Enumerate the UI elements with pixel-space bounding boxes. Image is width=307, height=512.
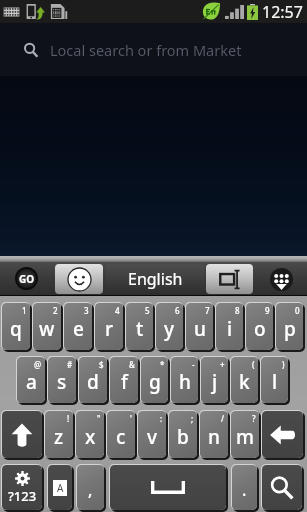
staticText: 3 bbox=[84, 305, 89, 316]
button[interactable]: s bbox=[48, 357, 76, 403]
staticText: GO bbox=[19, 272, 35, 286]
button[interactable]: e bbox=[64, 303, 92, 350]
staticText: x bbox=[85, 424, 96, 450]
staticText: m bbox=[236, 424, 254, 450]
staticText: b bbox=[177, 424, 189, 450]
button[interactable]: . bbox=[232, 465, 257, 510]
staticText: ? bbox=[252, 413, 256, 424]
staticText: 9 bbox=[265, 305, 270, 316]
staticText: ) bbox=[282, 359, 285, 370]
staticText: 8 bbox=[235, 305, 240, 316]
button[interactable]: v bbox=[138, 411, 166, 458]
staticText: 0 bbox=[295, 305, 300, 316]
button[interactable]: l bbox=[261, 357, 288, 403]
staticText: 12:57 bbox=[262, 1, 303, 23]
staticText: u bbox=[194, 316, 206, 342]
staticText: ?123 bbox=[8, 487, 37, 505]
staticText: Local search or from Market bbox=[50, 40, 242, 60]
button[interactable]: k bbox=[231, 357, 258, 403]
staticText: r bbox=[105, 316, 114, 342]
button[interactable]: d bbox=[79, 357, 107, 403]
button[interactable]: , bbox=[77, 465, 104, 510]
staticText: w bbox=[39, 316, 55, 342]
button[interactable]: Resize keyboard bbox=[206, 264, 253, 294]
staticText: 5 bbox=[145, 305, 150, 316]
staticText: i bbox=[227, 316, 233, 342]
button[interactable]: i bbox=[216, 303, 243, 350]
staticText: " bbox=[97, 413, 101, 424]
button[interactable]: More options bbox=[269, 267, 293, 291]
button[interactable]: Local search or from Market bbox=[0, 23, 307, 76]
button[interactable]: f bbox=[110, 357, 138, 403]
button[interactable]: j bbox=[201, 357, 228, 403]
staticText: d bbox=[87, 369, 99, 395]
staticText: f bbox=[121, 369, 128, 395]
button[interactable]: Backspace bbox=[262, 411, 303, 458]
button[interactable]: a bbox=[17, 357, 45, 403]
button[interactable]: Shift bbox=[2, 411, 42, 458]
staticText: - bbox=[192, 359, 195, 370]
staticText: ( bbox=[252, 359, 255, 370]
staticText: # bbox=[67, 359, 73, 370]
staticText: ' bbox=[130, 413, 132, 424]
staticText: q bbox=[10, 316, 22, 342]
staticText: . bbox=[242, 479, 247, 501]
button[interactable]: Emoji bbox=[55, 264, 103, 294]
button[interactable]: o bbox=[246, 303, 273, 350]
staticText: y bbox=[164, 316, 175, 342]
staticText: 6 bbox=[175, 305, 180, 316]
staticText: + bbox=[220, 359, 225, 370]
button[interactable]: Space bbox=[110, 465, 226, 510]
staticText: l bbox=[272, 369, 278, 395]
staticText: o bbox=[254, 316, 266, 342]
staticText: 7 bbox=[205, 305, 210, 316]
staticText: z bbox=[54, 424, 64, 450]
button[interactable]: g bbox=[141, 357, 168, 403]
button[interactable]: p bbox=[276, 303, 303, 350]
button[interactable]: m bbox=[231, 411, 259, 458]
button[interactable]: h bbox=[171, 357, 198, 403]
button[interactable]: Language bbox=[48, 465, 72, 510]
staticText: p bbox=[284, 316, 296, 342]
button[interactable]: b bbox=[169, 411, 197, 458]
staticText: ; bbox=[191, 413, 194, 424]
staticText: $ bbox=[99, 359, 104, 370]
staticText: A bbox=[57, 481, 64, 495]
staticText: k bbox=[239, 369, 250, 395]
button[interactable]: n bbox=[200, 411, 228, 458]
button[interactable]: r bbox=[95, 303, 123, 350]
staticText: h bbox=[179, 369, 191, 395]
staticText: c bbox=[116, 424, 126, 450]
staticText: : bbox=[160, 413, 163, 424]
button[interactable]: English bbox=[106, 264, 204, 294]
staticText: a bbox=[26, 369, 37, 395]
button[interactable]: Search bbox=[262, 465, 302, 510]
button[interactable]: y bbox=[156, 303, 183, 350]
staticText: e bbox=[73, 316, 84, 342]
staticText: English bbox=[128, 268, 183, 290]
staticText: ! bbox=[67, 413, 70, 424]
staticText: 2 bbox=[53, 305, 58, 316]
staticText: n bbox=[208, 424, 220, 450]
staticText: j bbox=[212, 369, 218, 395]
staticText: , bbox=[88, 479, 93, 501]
staticText: t bbox=[136, 316, 144, 342]
staticText: @ bbox=[34, 359, 42, 370]
button[interactable]: u bbox=[186, 303, 213, 350]
staticText: 1 bbox=[22, 305, 27, 316]
staticText: s bbox=[57, 369, 67, 395]
button[interactable]: GO bbox=[17, 269, 36, 288]
button[interactable]: t bbox=[126, 303, 153, 350]
staticText: / bbox=[221, 413, 225, 424]
staticText: & bbox=[129, 359, 135, 370]
button[interactable]: w bbox=[33, 303, 61, 350]
button[interactable]: c bbox=[107, 411, 135, 458]
staticText: * bbox=[160, 359, 165, 370]
staticText: g bbox=[149, 369, 161, 395]
button[interactable]: x bbox=[76, 411, 104, 458]
button[interactable]: z bbox=[45, 411, 73, 458]
button[interactable]: Symbols bbox=[2, 465, 42, 510]
button[interactable]: q bbox=[2, 303, 30, 350]
staticText: v bbox=[147, 424, 158, 450]
staticText: 4 bbox=[115, 305, 120, 316]
